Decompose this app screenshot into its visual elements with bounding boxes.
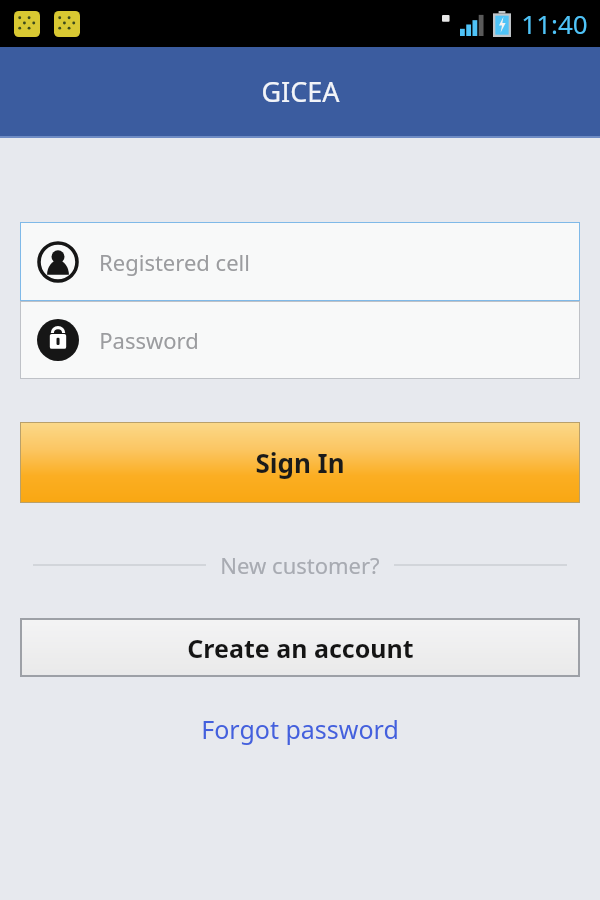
staticText: GICEA [261, 73, 340, 110]
button[interactable]: Password [20, 301, 580, 379]
staticText: Registered cell [99, 247, 250, 277]
button[interactable]: Registered cell [20, 222, 580, 301]
button[interactable]: Forgot password [185, 706, 415, 752]
button[interactable]: Sign In [20, 422, 580, 503]
button[interactable]: Create an account [20, 618, 580, 677]
staticText: Create an account [187, 631, 414, 665]
staticText: Forgot password [201, 712, 399, 746]
staticText: Password [99, 325, 199, 355]
staticText: 11:40 [521, 6, 588, 41]
staticText: New customer? [220, 550, 380, 580]
staticText: Sign In [255, 445, 345, 480]
